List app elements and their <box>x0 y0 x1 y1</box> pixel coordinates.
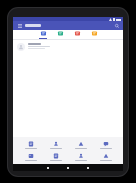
button[interactable]: Share target <box>97 141 114 149</box>
button[interactable]: Share target <box>47 153 64 161</box>
button[interactable]: Share target <box>22 153 39 161</box>
button[interactable]: Share target <box>72 141 89 149</box>
button[interactable]: Share target <box>72 153 89 161</box>
button[interactable]: Category tab <box>89 30 99 39</box>
button[interactable]: Category tab <box>38 30 48 39</box>
button[interactable]: Home <box>58 166 78 170</box>
button[interactable]: Share target <box>47 141 64 149</box>
button[interactable] <box>13 40 123 54</box>
button[interactable]: Recent apps <box>78 166 98 170</box>
button[interactable]: Share target <box>22 141 39 149</box>
button[interactable]: Category tab <box>72 30 82 39</box>
button[interactable]: Back <box>38 166 58 170</box>
button[interactable]: Category tab <box>55 30 65 39</box>
button[interactable]: Share target <box>97 153 114 161</box>
button[interactable]: Open navigation drawer <box>16 22 23 29</box>
button[interactable]: Search <box>113 22 120 29</box>
